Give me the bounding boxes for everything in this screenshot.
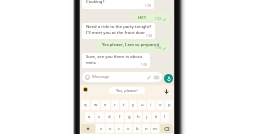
staticText: Need a ride to the party tonight?	[86, 24, 152, 30]
staticText: u	[141, 102, 144, 108]
button[interactable]: w	[91, 100, 100, 110]
button[interactable]: x	[106, 124, 114, 133]
button[interactable]: y	[129, 100, 137, 110]
button[interactable]: u	[138, 100, 146, 110]
staticText: b	[136, 126, 139, 132]
button[interactable]: g	[125, 112, 133, 122]
staticText: x	[109, 126, 112, 132]
button[interactable]: i	[147, 100, 155, 110]
button[interactable]: h	[134, 112, 142, 122]
staticText: Message	[92, 74, 110, 80]
staticText: w	[94, 102, 98, 108]
staticText: Cooking?	[86, 0, 105, 5]
button[interactable]: Shift	[81, 124, 95, 133]
button[interactable]: c	[115, 124, 123, 133]
staticText: 1:14	[146, 34, 152, 38]
button[interactable]: Yes please, I am so prepared	[98, 41, 169, 51]
button[interactable]: e	[101, 100, 110, 110]
staticText: s	[98, 114, 101, 120]
button[interactable]: q	[81, 100, 90, 110]
button[interactable]: Hi!!!	[134, 14, 169, 22]
staticText: n	[145, 126, 148, 132]
staticText: v	[127, 126, 130, 132]
staticText: d	[108, 114, 111, 120]
staticText: a	[88, 114, 91, 120]
button[interactable]: Backspace	[160, 124, 173, 133]
staticText: 1:15	[155, 46, 161, 50]
button[interactable]: Need a ride to the party tonight?	[82, 23, 155, 39]
staticText: y	[132, 102, 135, 108]
button[interactable]: v	[124, 124, 132, 133]
button[interactable]: l	[161, 112, 169, 122]
button[interactable]: r	[111, 100, 119, 110]
staticText: g	[128, 114, 131, 120]
staticText: q	[84, 102, 87, 108]
staticText: 1:10	[145, 4, 151, 8]
staticText: l	[164, 114, 166, 120]
staticText: Hi!!!	[138, 15, 146, 21]
staticText: 1:16	[141, 63, 147, 67]
button[interactable]: Voice message	[164, 74, 173, 83]
staticText: t	[123, 102, 125, 108]
button[interactable]: t	[120, 100, 128, 110]
button[interactable]: a	[85, 112, 94, 122]
other: Attach	[147, 75, 152, 80]
button[interactable]: j	[143, 112, 151, 122]
button[interactable]: Hey, are you free tonight?	[82, 0, 154, 9]
staticText: Yes, please!	[116, 88, 138, 93]
staticText: j	[146, 114, 148, 120]
button[interactable]: o	[156, 100, 164, 110]
button[interactable]: Yes, please!	[109, 87, 145, 94]
staticText: r	[114, 102, 116, 108]
staticText: z	[100, 126, 102, 132]
other: Camera	[154, 75, 159, 80]
button[interactable]: p	[165, 100, 173, 110]
staticText: Yes please, I am so prepared	[102, 42, 160, 48]
staticText: i	[150, 102, 152, 108]
button[interactable]: Message	[82, 72, 162, 82]
staticText: e	[104, 102, 107, 108]
button[interactable]: k	[152, 112, 160, 122]
button[interactable]: z	[96, 124, 105, 133]
staticText: o	[159, 102, 162, 108]
button[interactable]: Google	[83, 87, 88, 92]
staticText: m	[153, 126, 157, 132]
button[interactable]: n	[142, 124, 150, 133]
staticText: c	[118, 126, 121, 132]
staticText: f	[119, 114, 121, 120]
button[interactable]: m	[151, 124, 159, 133]
staticText: 1:12	[155, 17, 161, 21]
staticText: k	[155, 114, 158, 120]
button[interactable]: b	[133, 124, 141, 133]
button[interactable]: f	[115, 112, 124, 122]
button[interactable]: s	[95, 112, 104, 122]
button[interactable]: Expand suggestions	[164, 89, 169, 94]
button[interactable]: d	[105, 112, 114, 122]
staticText: h	[137, 114, 140, 120]
staticText: p	[168, 102, 171, 108]
staticText: Sure, see you there in about ten	[86, 54, 148, 60]
staticText: mins	[86, 60, 96, 66]
staticText: I'll meet you at the front door	[86, 30, 146, 36]
button[interactable]: Sure, see you there in about ten	[82, 53, 150, 68]
